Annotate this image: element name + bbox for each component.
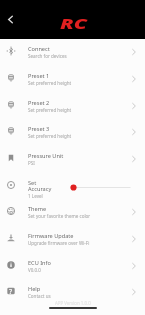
staticText: Firmware Update xyxy=(28,232,74,240)
button[interactable]: Connect xyxy=(0,45,145,72)
button[interactable]: Preset 3 xyxy=(0,125,145,152)
button[interactable]: Firmware Update xyxy=(0,232,145,259)
staticText: Pressure Unit xyxy=(28,152,64,160)
staticText: 1 Level xyxy=(28,193,43,199)
button[interactable]: Preset 2 xyxy=(0,99,145,126)
button[interactable]: Pressure Unit xyxy=(0,152,145,179)
staticText: ECU Info xyxy=(28,259,51,267)
staticText: APP Version 1.0.0 xyxy=(55,300,91,306)
staticText: RC xyxy=(60,13,87,33)
staticText: Upgrade firmware over Wi-Fi xyxy=(28,240,90,246)
staticText: Theme xyxy=(28,205,47,213)
button[interactable]: Set Accuracy xyxy=(0,179,145,206)
button[interactable]: Preset 1 xyxy=(0,72,145,99)
staticText: Preset 1 xyxy=(28,72,50,80)
staticText: Preset 3 xyxy=(28,125,50,133)
staticText: PSI xyxy=(28,160,35,166)
staticText: Set Accuracy xyxy=(28,179,52,193)
staticText: Connect xyxy=(28,45,50,53)
staticText: Set preferred height xyxy=(28,107,72,113)
staticText: Help xyxy=(28,285,41,293)
staticText: Set your favorite theme color xyxy=(28,213,91,219)
button[interactable]: ECU Info xyxy=(0,259,145,286)
staticText: Contact us xyxy=(28,293,51,299)
staticText: Set preferred height xyxy=(28,80,72,86)
staticText: Set preferred height xyxy=(28,133,72,139)
staticText: Preset 2 xyxy=(28,99,50,107)
button[interactable]: Theme xyxy=(0,205,145,232)
staticText: V0.0.0 xyxy=(28,267,41,273)
button[interactable]: ? xyxy=(0,285,145,312)
staticText: Search for devices xyxy=(28,53,67,59)
button[interactable]: Back xyxy=(1,10,20,29)
staticText: ? xyxy=(9,287,13,295)
